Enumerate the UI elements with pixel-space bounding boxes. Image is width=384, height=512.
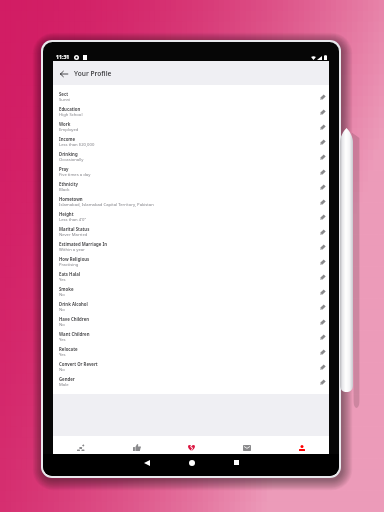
button[interactable]: Drinking (53, 149, 329, 164)
staticText: Five times a day (59, 172, 91, 178)
staticText: Work (59, 121, 71, 127)
staticText: Yes (59, 337, 66, 343)
button[interactable]: Matches (164, 436, 219, 454)
button[interactable]: Marital Status (53, 224, 329, 239)
button[interactable]: Home (169, 454, 214, 471)
staticText: Eats Halal (59, 271, 81, 277)
staticText: Have Children (59, 316, 90, 322)
staticText: 11:31 (56, 53, 70, 60)
staticText: Black (59, 187, 70, 193)
button[interactable]: Recent apps (214, 454, 259, 471)
staticText: Islamabad, Islamabad Capital Territory, … (59, 202, 154, 208)
staticText: No (59, 367, 65, 373)
button[interactable]: Pray (53, 164, 329, 179)
staticText: Hometown (59, 196, 83, 202)
button[interactable]: Messages (219, 436, 274, 454)
staticText: Drink Alcohol (59, 301, 88, 307)
staticText: Sunni (59, 97, 71, 103)
button[interactable]: Relocate (53, 344, 329, 359)
staticText: Your Profile (74, 69, 112, 78)
button[interactable]: Back (124, 454, 169, 471)
staticText: Education (59, 106, 81, 112)
button[interactable]: Back (53, 63, 74, 84)
staticText: Marital Status (59, 226, 90, 232)
button[interactable]: Ethnicity (53, 179, 329, 194)
button[interactable]: Eats Halal (53, 269, 329, 284)
staticText: How Religious (59, 256, 90, 262)
button[interactable]: Likes (109, 436, 164, 454)
staticText: Height (59, 211, 74, 217)
button[interactable]: Discover (53, 436, 109, 454)
button[interactable]: Convert Or Revert (53, 359, 329, 374)
staticText: Gender (59, 376, 75, 382)
staticText: Relocate (59, 346, 78, 352)
staticText: Practising (59, 262, 79, 268)
staticText: Male (59, 382, 69, 388)
button[interactable]: Profile (274, 436, 329, 454)
button[interactable]: Education (53, 104, 329, 119)
staticText: No (59, 322, 65, 328)
button[interactable]: Hometown (53, 194, 329, 209)
button[interactable]: Want Children (53, 329, 329, 344)
staticText: Pray (59, 166, 69, 172)
staticText: Smoke (59, 286, 74, 292)
staticText: Within a year (59, 247, 85, 253)
staticText: Employed (59, 127, 79, 133)
staticText: Income (59, 136, 76, 142)
staticText: Never Married (59, 232, 88, 238)
staticText: Yes (59, 352, 66, 358)
button[interactable]: Income (53, 134, 329, 149)
button[interactable]: Estimated Marriage In (53, 239, 329, 254)
staticText: High School (59, 112, 83, 118)
staticText: Yes (59, 277, 66, 283)
button[interactable]: How Religious (53, 254, 329, 269)
button[interactable]: Work (53, 119, 329, 134)
staticText: Less than $20,000 (59, 142, 95, 148)
staticText: Less than 4'0" (59, 217, 87, 223)
button[interactable]: Have Children (53, 314, 329, 329)
staticText: Ethnicity (59, 181, 78, 187)
staticText: Convert Or Revert (59, 361, 98, 367)
button[interactable]: Height (53, 209, 329, 224)
button[interactable]: Smoke (53, 284, 329, 299)
button[interactable]: Drink Alcohol (53, 299, 329, 314)
staticText: Sect (59, 91, 69, 97)
staticText: Estimated Marriage In (59, 241, 107, 247)
button[interactable]: Sect (53, 89, 329, 104)
staticText: Drinking (59, 151, 78, 157)
staticText: Occasionally (59, 157, 84, 163)
button[interactable]: Gender (53, 374, 329, 389)
staticText: No (59, 292, 65, 298)
staticText: Want Children (59, 331, 90, 337)
staticText: No (59, 307, 65, 313)
